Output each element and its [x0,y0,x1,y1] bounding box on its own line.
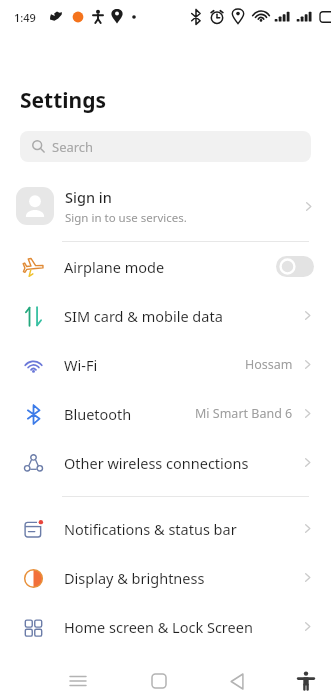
button[interactable]: Airplane mode [0,242,331,291]
staticText: Sign in [65,187,112,207]
button[interactable]: Other wireless connections [0,438,331,487]
staticText: Display & brightness [64,568,205,588]
staticText: Search [52,138,94,156]
staticText: SIM card & mobile data [64,306,223,326]
staticText: Bluetooth [64,404,132,424]
button[interactable]: SIM card & mobile data [0,291,331,340]
staticText: Airplane mode [64,257,165,277]
button[interactable]: Back [221,665,253,697]
staticText: Home screen & Lock Screen [64,617,253,637]
button[interactable]: Display & brightness [0,553,331,602]
button[interactable]: Wi-Fi [0,340,331,389]
staticText: Hossam [245,356,293,373]
button[interactable]: Home screen & Lock Screen [0,602,331,651]
staticText: Other wireless connections [64,453,249,473]
button[interactable]: Accessibility [289,664,323,698]
staticText: Sign in to use services. [65,210,187,226]
button[interactable]: Menu [62,665,94,697]
staticText: Mi Smart Band 6 [195,405,293,422]
button[interactable]: Toggle airplane mode [276,256,314,277]
staticText: Notifications & status bar [64,519,237,539]
button[interactable]: Home [143,665,175,697]
button[interactable]: Bluetooth [0,389,331,438]
button[interactable]: Notifications & status bar [0,504,331,553]
button[interactable]: Search [20,131,311,162]
staticText: Wi-Fi [64,355,98,375]
staticText: 1:49 [14,10,36,25]
staticText: Settings [20,86,107,115]
button[interactable]: Sign in [0,178,331,234]
